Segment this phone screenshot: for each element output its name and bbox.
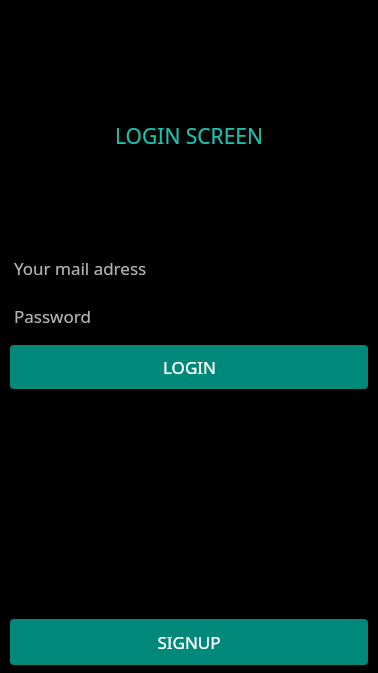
staticText: Your mail adress [14,257,147,280]
button[interactable]: SIGNUP [10,619,368,665]
staticText: SIGNUP [157,631,221,654]
staticText: Password [14,305,91,328]
button[interactable]: Email input field [0,255,378,281]
staticText: LOGIN SCREEN [115,122,263,151]
button[interactable]: Password input field [0,303,378,329]
button[interactable]: LOGIN [10,345,368,389]
staticText: LOGIN [163,356,216,379]
